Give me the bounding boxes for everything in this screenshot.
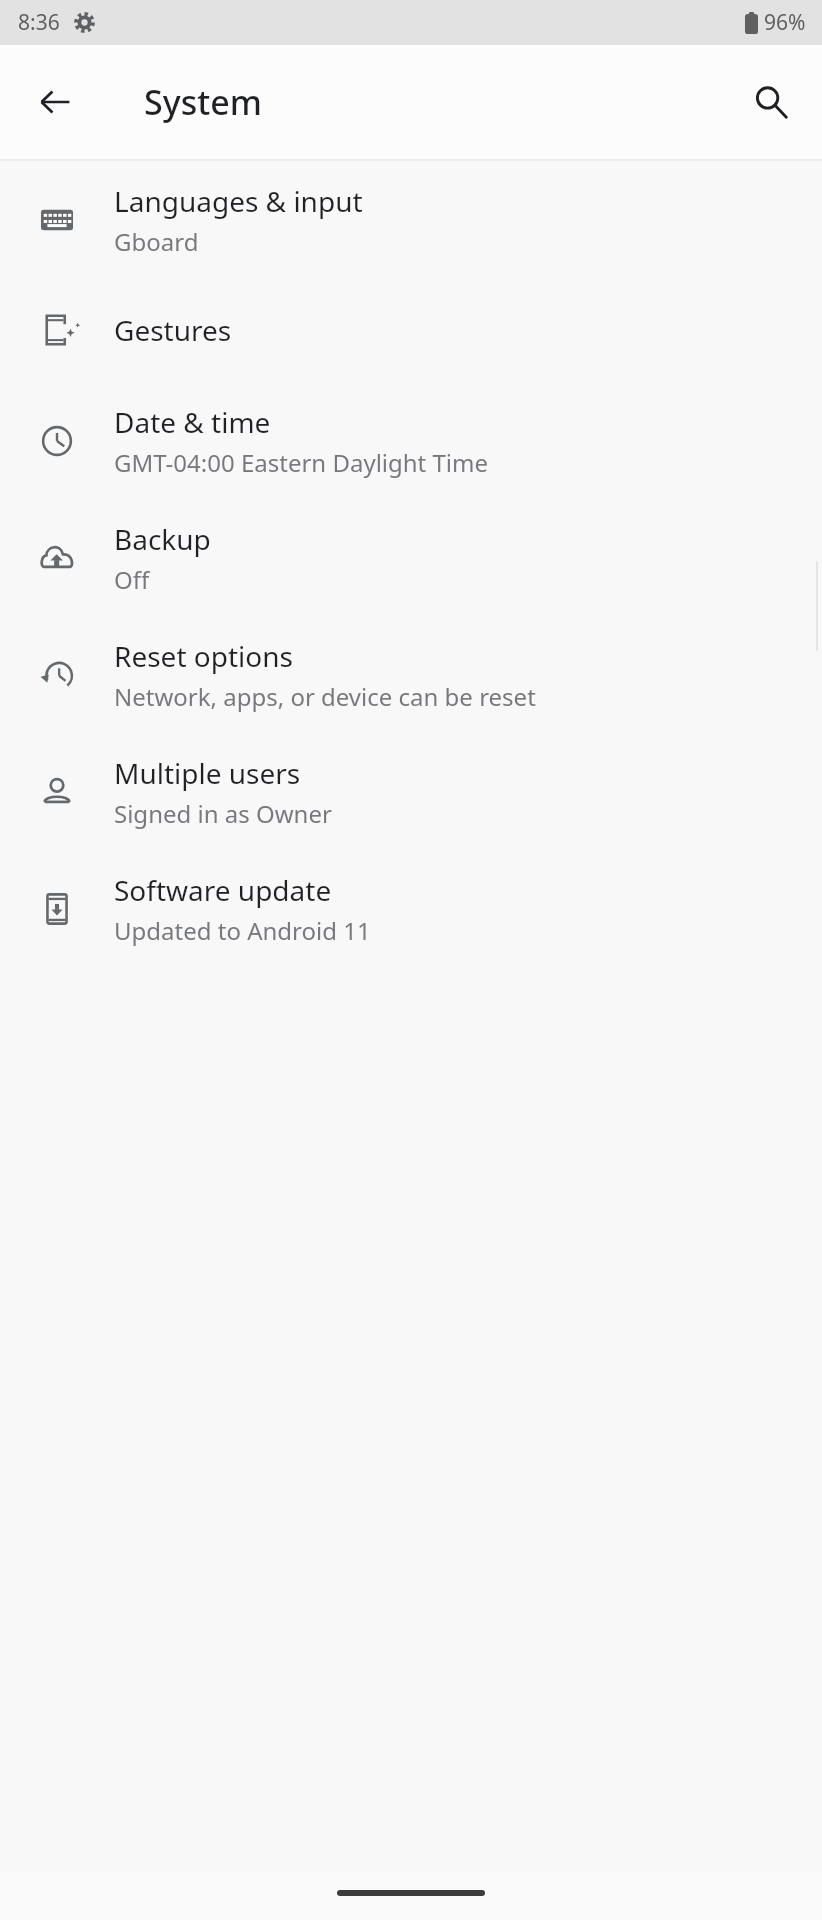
button[interactable]: Languages & input <box>0 161 822 278</box>
button[interactable]: Gestures <box>0 278 822 382</box>
button[interactable]: Navigate up <box>26 73 84 131</box>
button[interactable]: Search <box>742 73 800 131</box>
staticText: GMT-04:00 Eastern Daylight Time <box>114 446 489 479</box>
staticText: Network, apps, or device can be reset <box>114 680 536 713</box>
button[interactable]: Multiple users <box>0 733 822 850</box>
button[interactable]: Date & time <box>0 382 822 499</box>
staticText: 96% <box>764 8 806 37</box>
staticText: Gestures <box>114 311 232 349</box>
staticText: Date & time <box>114 403 271 441</box>
staticText: Multiple users <box>114 754 301 792</box>
button[interactable]: Reset options <box>0 616 822 733</box>
staticText: Updated to Android 11 <box>114 914 371 947</box>
staticText: Software update <box>114 871 332 909</box>
staticText: Gboard <box>114 225 199 258</box>
staticText: Off <box>114 563 150 596</box>
staticText: Signed in as Owner <box>114 797 332 830</box>
staticText: 8:36 <box>18 8 60 37</box>
button[interactable]: Backup <box>0 499 822 616</box>
button[interactable]: Software update <box>0 850 822 967</box>
staticText: System <box>144 79 262 125</box>
staticText: Backup <box>114 520 211 558</box>
staticText: Languages & input <box>114 182 363 220</box>
staticText: Reset options <box>114 637 293 675</box>
